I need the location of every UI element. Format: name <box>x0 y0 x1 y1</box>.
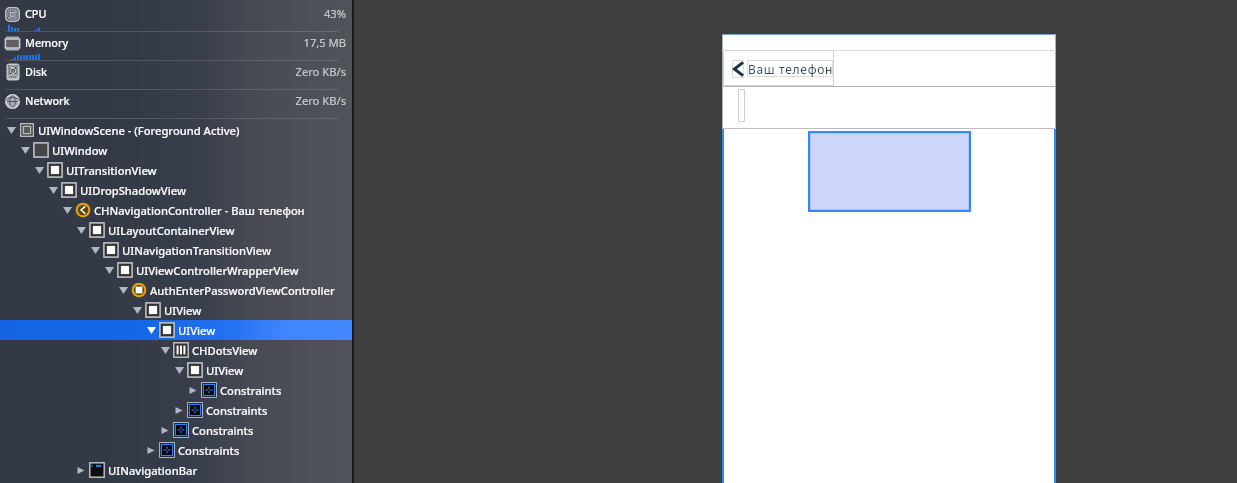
button[interactable]: UIViewControllerWrapperView <box>0 260 352 280</box>
staticText: UINavigationBar <box>108 463 198 478</box>
button[interactable]: UINavigationBar <box>0 460 352 480</box>
staticText: Constraints <box>220 383 282 398</box>
staticText: Constraints <box>178 443 240 458</box>
button[interactable]: UIWindowScene - (Foreground Active) <box>0 120 352 140</box>
staticText: UINavigationTransitionView <box>122 243 272 258</box>
button[interactable]: UIDropShadowView <box>0 180 352 200</box>
button[interactable]: Constraints <box>0 400 352 420</box>
button[interactable]: UIWindow <box>0 140 352 160</box>
button[interactable]: CHNavigationController - Ваш телефон <box>0 200 352 220</box>
staticText: UIViewControllerWrapperView <box>136 263 299 278</box>
staticText: Memory <box>25 35 69 50</box>
button[interactable]: Ваш телефон <box>747 60 833 77</box>
button[interactable]: Constraints <box>0 420 352 440</box>
button[interactable]: UIView <box>0 300 352 320</box>
staticText: AuthEnterPasswordViewController <box>150 283 335 298</box>
staticText: UIDropShadowView <box>80 183 186 198</box>
button[interactable]: UIView <box>0 360 352 380</box>
button[interactable]: AuthEnterPasswordViewController <box>0 280 352 300</box>
staticText: CHNavigationController - Ваш телефон <box>94 203 305 218</box>
staticText: Network <box>25 93 70 108</box>
staticText: UITransitionView <box>66 163 157 178</box>
staticText: UIView <box>206 363 244 378</box>
button[interactable]: Memory <box>0 32 352 61</box>
staticText: CPU <box>25 6 47 21</box>
button[interactable]: Constraints <box>0 380 352 400</box>
button[interactable]: UILayoutContainerView <box>0 220 352 240</box>
button[interactable]: CPU <box>0 3 352 32</box>
staticText: UIView <box>178 323 216 338</box>
staticText: Constraints <box>206 403 268 418</box>
staticText: Disk <box>25 64 48 79</box>
button[interactable]: CHDotsView <box>0 340 352 360</box>
staticText: CHDotsView <box>192 343 258 358</box>
staticText: Zero KB/s <box>0 64 346 79</box>
staticText: 43% <box>0 6 346 21</box>
button[interactable]: Constraints <box>0 440 352 460</box>
button[interactable]: UITransitionView <box>0 160 352 180</box>
button[interactable]: Back <box>732 60 744 78</box>
button[interactable]: UINavigationTransitionView <box>0 240 352 260</box>
staticText: UIWindow <box>52 143 108 158</box>
staticText: UIView <box>164 303 202 318</box>
staticText: Zero KB/s <box>0 93 346 108</box>
staticText: 17,5 MB <box>0 35 346 50</box>
staticText: UILayoutContainerView <box>108 223 235 238</box>
button[interactable]: UIView <box>0 320 352 340</box>
staticText: UIWindowScene - (Foreground Active) <box>38 123 240 138</box>
button[interactable] <box>723 50 834 86</box>
button[interactable]: Disk <box>0 61 352 90</box>
staticText: Constraints <box>192 423 254 438</box>
staticText: Ваш телефон <box>748 61 834 77</box>
button[interactable]: Network <box>0 90 352 119</box>
